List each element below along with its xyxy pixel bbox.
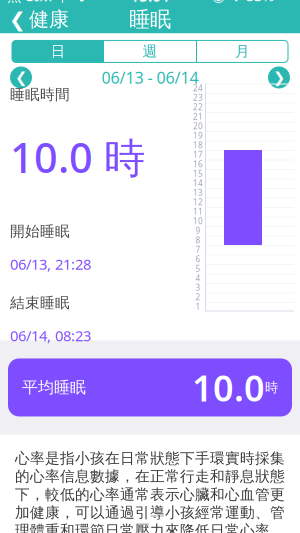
staticText: 1 [195,301,200,312]
staticText: ❮ [9,8,26,31]
staticText: ◉ ✻ 53% [212,0,274,5]
staticText: ᯤ [71,0,88,5]
staticText: 週 [142,42,157,60]
staticText: 10.0 [192,364,265,411]
staticText: 8 [195,235,200,246]
staticText: 19 [193,130,203,141]
staticText: 結束睡眠 [10,294,70,312]
staticText: 18 [193,140,203,151]
button[interactable]: 日 [12,40,104,62]
staticText: 17 [193,149,203,160]
button[interactable]: Next [268,66,290,88]
staticText: 睡眠 [129,6,171,33]
staticText: 11 [193,206,203,217]
staticText: 24 [193,83,203,94]
staticText: 20 [193,121,203,132]
staticText: 時 [265,379,278,396]
staticText: 3 [195,282,200,293]
staticText: 10.0 時 [10,129,145,184]
staticText: 06/14, 08:23 [10,326,91,345]
staticText: 9 [195,225,200,236]
button[interactable]: 週 [104,40,196,62]
staticText: 6 [195,254,200,265]
staticText: 15:01 [130,0,170,6]
staticText: ❯ [273,69,285,86]
staticText: 14 [193,178,203,189]
button[interactable]: ❮ [0,5,78,33]
staticText: 22 [193,102,203,113]
staticText: 4 [195,273,200,284]
staticText: 10 [193,216,203,227]
staticText: 平均睡眠 [22,378,86,397]
staticText: 7 [195,244,200,255]
staticText: 2 [195,292,200,303]
staticText: 16 [193,159,203,170]
staticText: 開始睡眠 [10,222,70,240]
staticText: 23 [193,92,203,103]
staticText: 心率是指小孩在日常狀態下手環實時採集的心率信息數據，在正常行走和靜息狀態下，較低… [15,449,285,533]
staticText: 06/13, 21:28 [10,254,91,274]
staticText: 21 [193,111,203,122]
staticText: 睡眠時間 [10,85,70,103]
staticText: 15 [193,168,203,179]
staticText: 13 [193,187,203,198]
staticText: 健康 [29,7,69,32]
button[interactable]: 月 [197,40,288,62]
staticText: 月 [235,42,250,60]
staticText: 12 [193,197,203,208]
staticText: 無 SIM 卡 [7,0,71,5]
button[interactable]: Previous [10,66,32,88]
staticText: 日 [50,42,65,60]
staticText: ❮ [15,69,27,86]
staticText: 5 [195,263,200,274]
staticText: 06/13 - 06/14 [101,67,198,88]
